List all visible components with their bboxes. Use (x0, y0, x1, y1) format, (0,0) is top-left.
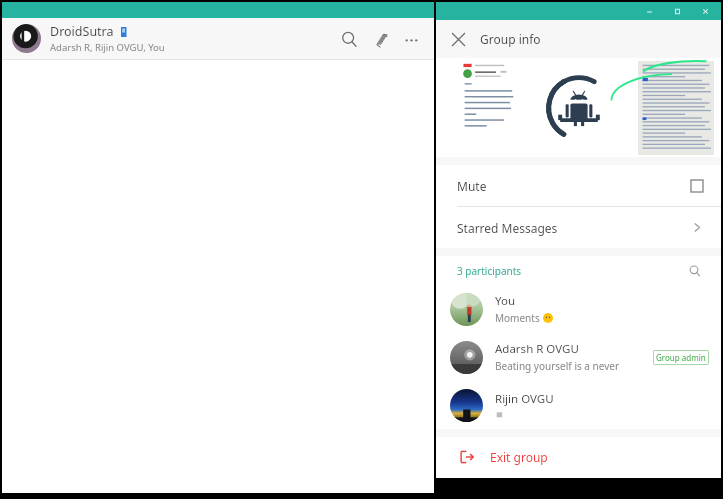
staticText: Beating yourself is a never ending commi… (495, 359, 653, 373)
staticText: Rijin OVGU (495, 391, 554, 407)
staticText: Exit group (490, 449, 548, 465)
staticText: DroidSutra (50, 23, 114, 40)
button[interactable]: DroidSutra (2, 18, 434, 59)
staticText: Adarsh R, Rijin OVGU, You (50, 41, 165, 54)
staticText: Group admin (656, 352, 706, 363)
button[interactable]: You (436, 285, 721, 333)
button[interactable]: Attach (368, 26, 394, 52)
staticText: Group info (480, 31, 541, 47)
button[interactable]: More options (398, 26, 424, 52)
button[interactable]: Rijin OVGU (436, 381, 721, 429)
button[interactable]: Close (436, 20, 480, 58)
button[interactable]: Minimize (635, 2, 663, 20)
button[interactable]: Photo (638, 61, 714, 155)
other: Search participants (687, 263, 703, 279)
button[interactable]: Search (336, 26, 362, 52)
staticText: Adarsh R OVGU (495, 341, 579, 357)
button[interactable]: Mute (436, 165, 721, 206)
staticText: 3 participants (457, 264, 522, 278)
button[interactable]: Starred Messages (436, 207, 721, 248)
button[interactable]: Close (691, 2, 719, 20)
staticText: Moments (495, 311, 540, 325)
button[interactable]: 3 participants (436, 256, 721, 285)
staticText: Mute (457, 178, 487, 194)
staticText: Starred Messages (457, 220, 558, 236)
button[interactable]: Android image (546, 75, 612, 141)
button[interactable]: Restore (663, 2, 691, 20)
button[interactable]: Photo (460, 61, 518, 155)
staticText: You (495, 293, 515, 309)
button[interactable]: Adarsh R OVGU (436, 333, 721, 381)
button[interactable]: Exit group (436, 437, 721, 477)
